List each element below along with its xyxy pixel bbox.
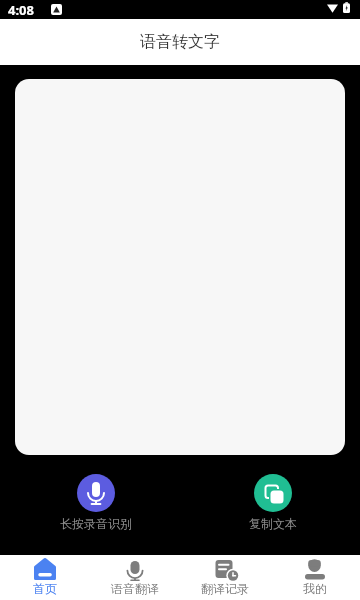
staticText: 首页 — [33, 581, 57, 596]
staticText: 4:08 — [8, 1, 34, 19]
staticText: 语音翻译 — [111, 581, 159, 596]
button[interactable] — [77, 474, 115, 512]
staticText: 翻译记录 — [201, 581, 249, 596]
staticText: 我的 — [303, 581, 327, 596]
button[interactable]: 我的 — [270, 555, 360, 600]
staticText: 复制文本 — [249, 516, 297, 531]
button[interactable]: 语音翻译 — [90, 555, 180, 600]
button[interactable]: 翻译记录 — [180, 555, 270, 600]
staticText: 语音转文字 — [140, 32, 220, 52]
button[interactable] — [254, 474, 292, 512]
button[interactable]: 首页 — [0, 555, 90, 600]
staticText: 长按录音识别 — [60, 516, 132, 531]
